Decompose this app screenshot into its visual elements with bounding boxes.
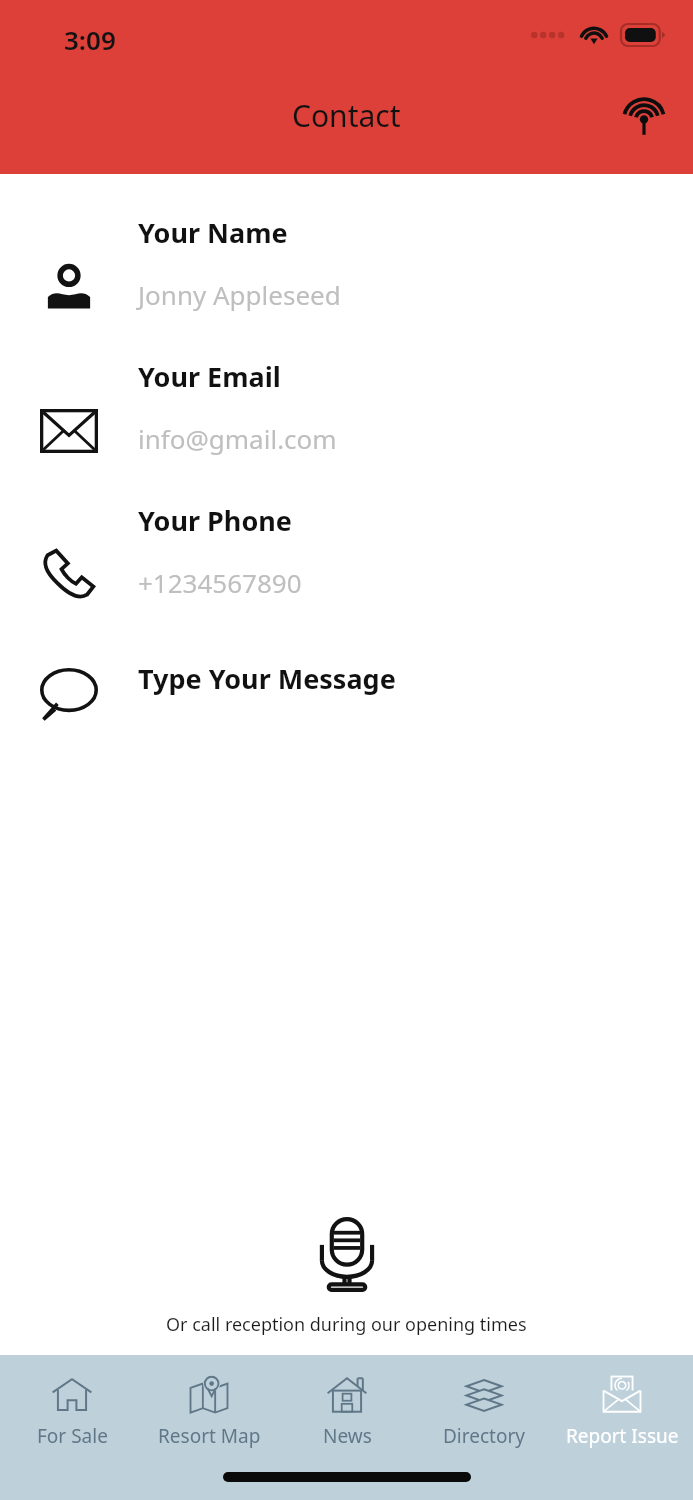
staticText: Your Email bbox=[138, 358, 281, 395]
staticText: For Sale bbox=[37, 1423, 108, 1449]
staticText: Report Issue bbox=[566, 1423, 679, 1449]
button[interactable]: Directory bbox=[418, 1369, 550, 1453]
button[interactable]: News bbox=[281, 1369, 413, 1453]
button[interactable]: Resort Map bbox=[143, 1369, 275, 1453]
staticText: Your Phone bbox=[138, 502, 292, 539]
button[interactable]: Your Phone bbox=[0, 492, 693, 610]
staticText: 3:09 bbox=[64, 22, 116, 57]
button[interactable]: Type Your Message bbox=[0, 636, 693, 720]
button[interactable]: Record voice message bbox=[299, 1206, 395, 1302]
staticText: Jonny Appleseed bbox=[138, 277, 341, 312]
staticText: +1234567890 bbox=[138, 565, 302, 600]
button[interactable]: For Sale bbox=[6, 1369, 138, 1453]
staticText: News bbox=[323, 1423, 372, 1449]
button[interactable]: Your Name bbox=[0, 204, 693, 322]
button[interactable]: Your Email bbox=[0, 348, 693, 466]
button[interactable]: Report Issue bbox=[556, 1369, 688, 1453]
staticText: Or call reception during our opening tim… bbox=[166, 1312, 527, 1337]
button[interactable]: Broadcast bbox=[617, 88, 671, 142]
staticText: Resort Map bbox=[158, 1423, 261, 1449]
staticText: Contact bbox=[292, 95, 401, 136]
staticText: info@gmail.com bbox=[138, 421, 337, 456]
staticText: Type Your Message bbox=[138, 660, 396, 697]
staticText: Directory bbox=[443, 1423, 525, 1449]
staticText: Your Name bbox=[138, 214, 288, 251]
